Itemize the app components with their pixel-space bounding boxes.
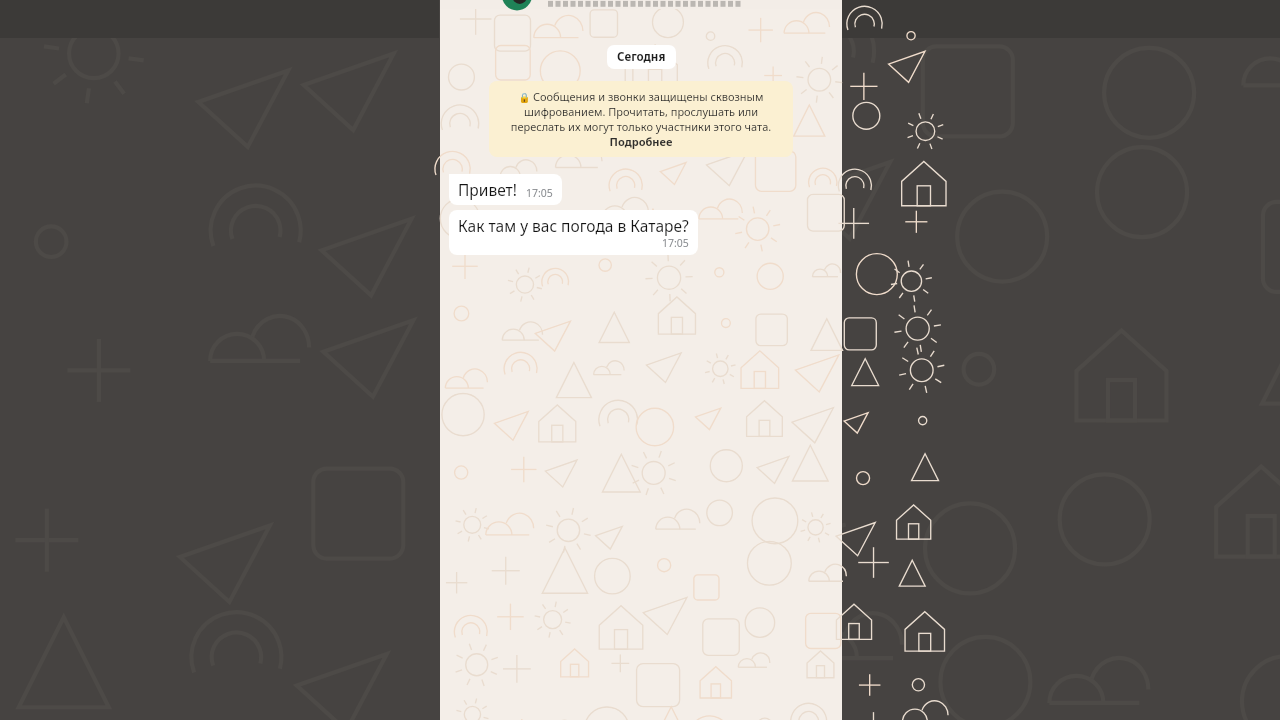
staticText: Как там у вас погода в Катаре?	[458, 215, 689, 236]
staticText: 17:05	[662, 236, 689, 250]
button[interactable]: Сегодня	[607, 45, 676, 69]
staticText: Привет!	[458, 179, 517, 200]
button[interactable]: 🔒 Сообщения и звонки защищены сквозным ш…	[489, 81, 793, 157]
staticText: 17:05	[526, 186, 553, 200]
button[interactable]: Как там у вас погода в Катаре?	[449, 210, 698, 255]
button[interactable]: Привет!	[449, 174, 562, 205]
staticText: Сегодня	[617, 49, 666, 65]
button[interactable]: Chat header	[440, 0, 842, 9]
staticText: 🔒 Сообщения и звонки защищены сквозным ш…	[500, 89, 782, 149]
